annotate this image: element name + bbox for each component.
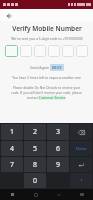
button[interactable]: Digit 2 [20,45,32,57]
button[interactable]: Keyboard switcher [70,189,93,200]
staticText: 2 [33,127,38,137]
button[interactable]: 9 [47,157,69,172]
button[interactable]: Digit 1 [5,45,18,57]
button[interactable]: 2 [24,124,46,140]
staticText: 6 [56,144,61,154]
button[interactable]: Backspace [70,124,92,140]
staticText: Done [76,146,87,152]
staticText: 0 [33,176,38,186]
staticText: 3 [56,127,61,137]
staticText: 4 [10,144,15,154]
button[interactable]: 6 [47,141,69,156]
staticText: 5 [33,144,38,154]
button[interactable]: 00:59 [52,65,62,70]
button[interactable]: 4 [1,141,23,156]
staticText: 7 [10,160,15,170]
button[interactable]: Digit 3 [34,45,46,57]
button[interactable]: Hide keyboard [47,189,70,200]
button[interactable]: Recents [0,189,24,200]
staticText: 1 [10,127,15,137]
button[interactable]: Enter [70,157,92,172]
button[interactable]: 3 [47,124,69,140]
button[interactable]: 8 [24,157,46,172]
button[interactable]: Digit 6 [76,45,88,57]
button[interactable]: Back [4,11,13,20]
staticText: Send Again [30,65,50,70]
button[interactable]: 5 [24,141,46,156]
button[interactable]: Home [24,189,47,200]
button[interactable]: 0 [24,173,46,188]
button[interactable]: 1 [1,124,23,140]
staticText: 00:59 [52,65,62,70]
staticText: Please disable Do Not Disturb to receive… [9,86,84,100]
button[interactable]: Digit 4 [48,45,60,57]
staticText: Verify Mobile Number [12,24,82,33]
button[interactable]: Done [70,141,92,156]
staticText: We've sent you a 6-digit code to +99 000… [11,36,83,41]
staticText: You have 2 times left to request another… [0,75,93,79]
button[interactable]: 7 [1,157,23,172]
staticText: 9 [56,160,61,170]
button[interactable]: Please disable Do Not Disturb to receive… [9,86,84,100]
staticText: 8 [33,160,38,170]
button[interactable]: Digit 5 [62,45,74,57]
